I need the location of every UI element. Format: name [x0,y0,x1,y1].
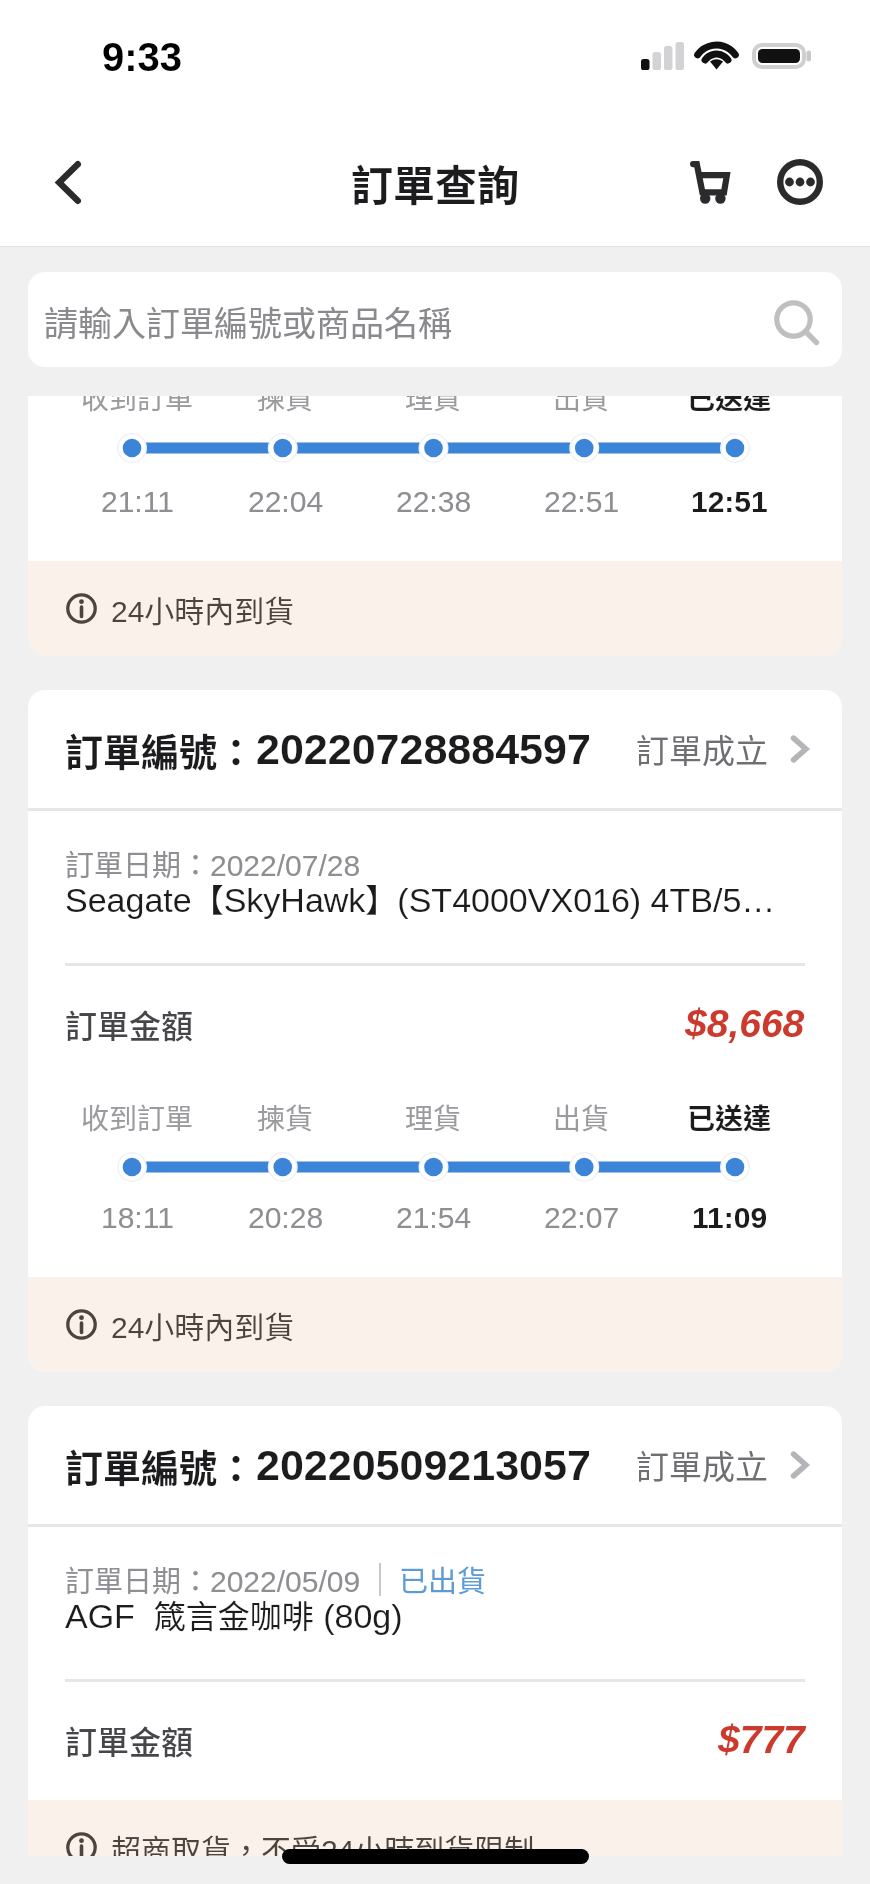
button[interactable]: More options [760,142,840,222]
staticText: 訂單日期：2022/05/09 [65,1558,361,1600]
staticText: 訂單成立 [636,1441,768,1489]
staticText: 訂單編號： [65,1438,256,1493]
button[interactable]: 收到訂單 [28,396,842,656]
staticText: 20220728884597 [256,725,591,773]
staticText: 請輸入訂單編號或商品名稱 [44,297,452,346]
staticText: 18:11 [101,1201,174,1235]
staticText: 超商取貨，不受24小時到貨限制 [111,1826,535,1856]
staticText: 已送達 [687,396,772,418]
staticText: 22:07 [544,1201,620,1235]
staticText: 已送達 [687,1097,772,1138]
staticText: 訂單金額 [65,1001,194,1047]
staticText: Seagate【SkyHawk】(ST4000VX016) 4TB/5… [65,875,776,921]
staticText: 揀貨 [257,1097,314,1138]
staticText: 訂單查詢 [351,152,520,213]
staticText: 理貨 [405,396,462,418]
staticText: 訂單日期：2022/07/28 [65,842,361,884]
staticText: 21:54 [396,1201,472,1235]
staticText: 11:09 [692,1201,768,1235]
staticText: 24小時內到貨 [111,587,295,630]
staticText: 已出貨 [399,1558,487,1600]
staticText: 22:51 [544,485,620,519]
staticText: $8,668 [685,1002,805,1046]
staticText: 20220509213057 [256,1441,591,1489]
staticText: 9:33 [102,35,183,80]
staticText: 訂單成立 [636,725,768,773]
staticText: 21:11 [101,485,174,519]
staticText: 22:04 [248,485,324,519]
staticText: $777 [718,1718,805,1762]
staticText: 收到訂單 [81,396,194,418]
staticText: 20:28 [248,1201,324,1235]
staticText: 22:38 [396,485,472,519]
button[interactable]: 訂單編號： [28,690,842,808]
button[interactable]: Shopping cart [670,142,750,222]
button[interactable]: 請輸入訂單編號或商品名稱 [28,272,842,367]
staticText: 訂單編號： [65,722,256,777]
staticText: 出貨 [553,1097,610,1138]
staticText: 收到訂單 [81,1097,194,1138]
button[interactable]: 訂單編號： [28,1406,842,1524]
staticText: 24小時內到貨 [111,1303,295,1346]
staticText: 揀貨 [257,396,314,418]
button[interactable]: Back [26,140,110,224]
staticText: 出貨 [553,396,610,418]
staticText: 12:51 [691,485,768,519]
staticText: 訂單金額 [65,1717,194,1763]
staticText: AGF 箴言金咖啡 (80g) [65,1591,403,1637]
staticText: 理貨 [405,1097,462,1138]
